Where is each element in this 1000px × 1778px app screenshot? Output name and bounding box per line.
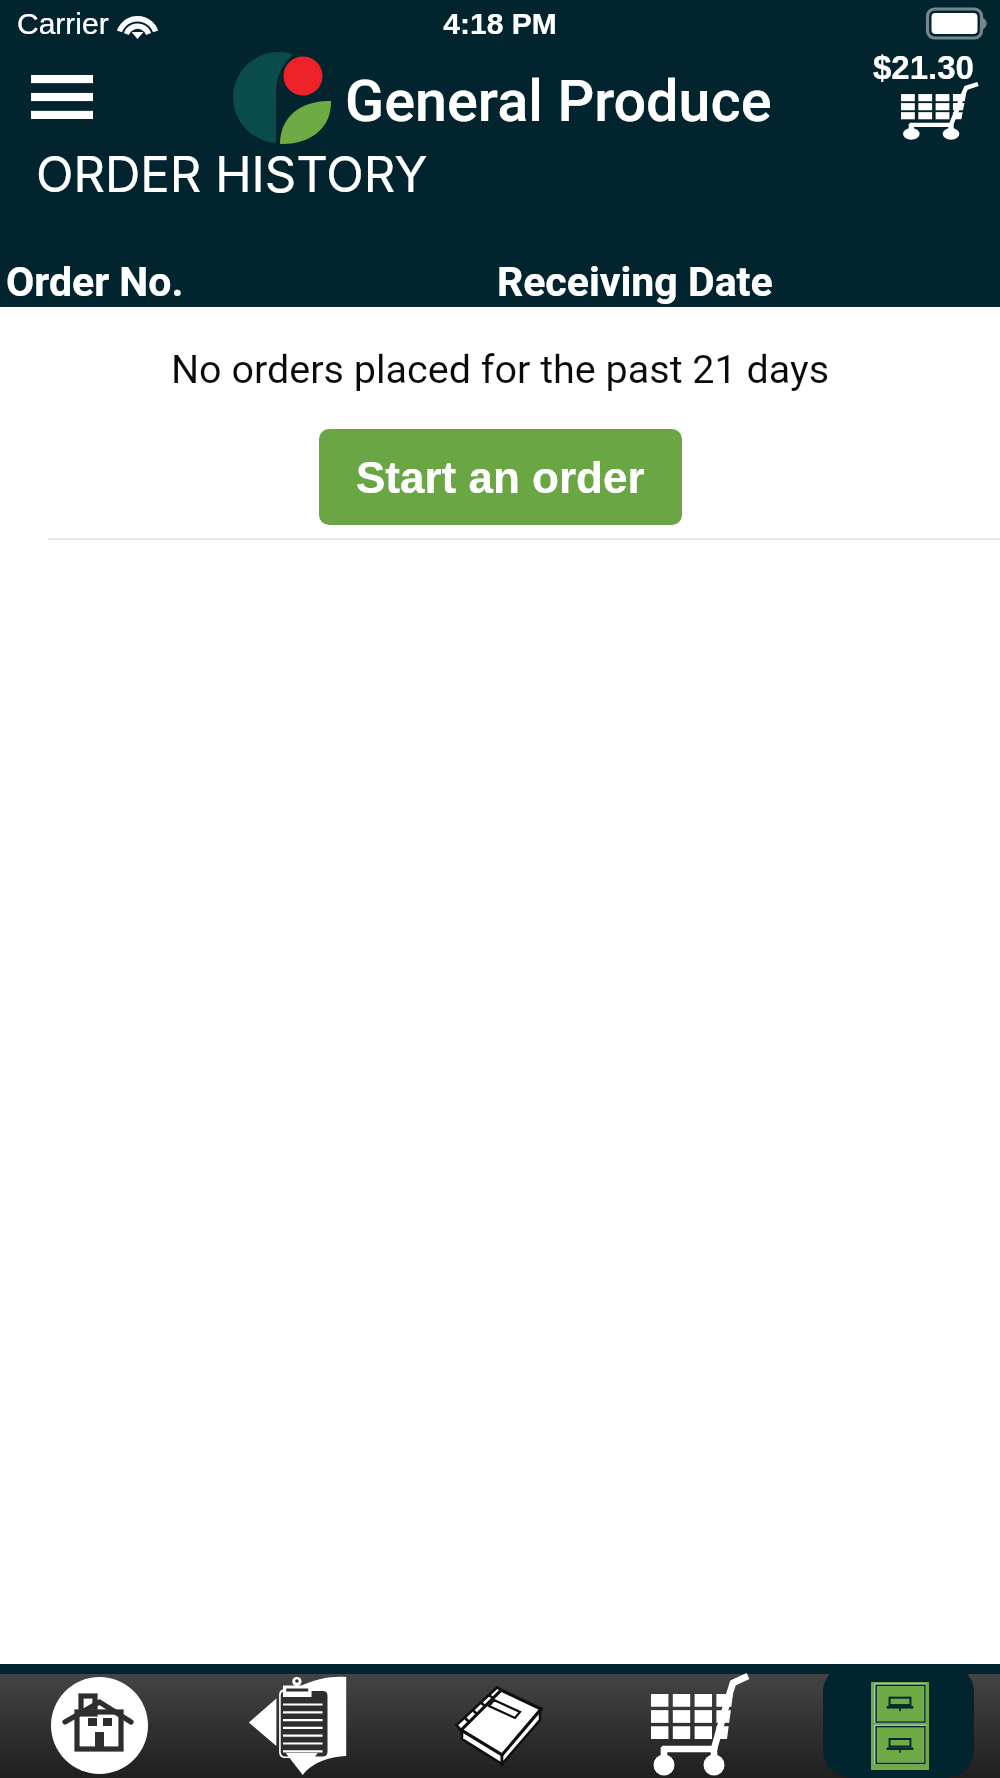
staticText: General Produce (345, 68, 772, 135)
button[interactable]: Order history (800, 1674, 1000, 1778)
staticText: Receiving Date (497, 258, 773, 306)
button[interactable]: Catalog (400, 1674, 600, 1778)
staticText: $21.30 (873, 49, 974, 86)
button[interactable]: Order guide (200, 1674, 400, 1778)
staticText: Order No. (6, 258, 184, 306)
button[interactable]: Menu (0, 52, 124, 144)
staticText: 4:18 PM (0, 7, 1000, 41)
staticText: ORDER HISTORY (36, 145, 428, 204)
staticText: Carrier (17, 7, 109, 41)
button[interactable]: Cart (600, 1674, 800, 1778)
button[interactable]: Shopping cart (862, 44, 1000, 149)
staticText: Start an order (356, 453, 645, 502)
button[interactable]: Start an order (319, 429, 682, 525)
staticText: No orders placed for the past 21 days (0, 346, 1000, 392)
button[interactable]: Home (0, 1674, 200, 1778)
